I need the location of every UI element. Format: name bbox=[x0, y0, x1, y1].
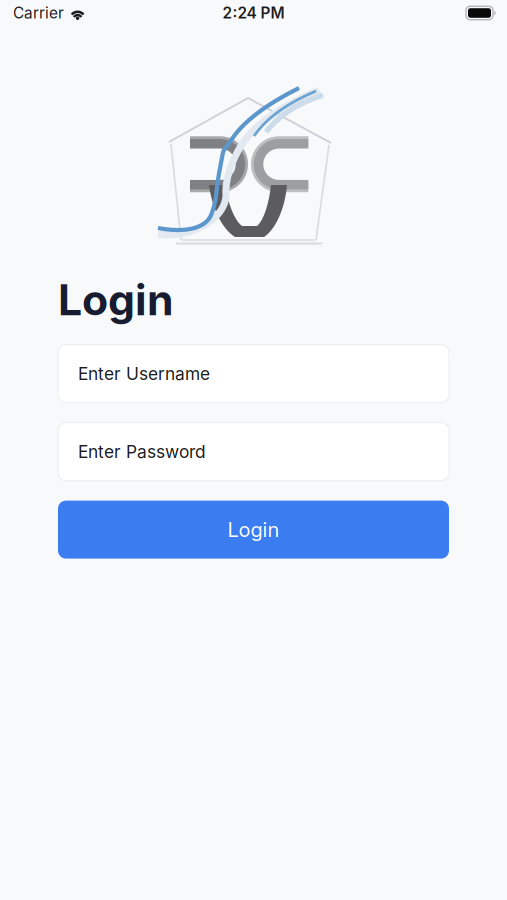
button[interactable]: Enter Password bbox=[58, 423, 449, 481]
button[interactable]: Enter Username bbox=[58, 345, 449, 403]
staticText: Enter Username bbox=[78, 363, 210, 384]
button[interactable]: Login bbox=[58, 501, 449, 559]
staticText: Carrier bbox=[13, 4, 64, 22]
staticText: Login bbox=[58, 274, 174, 326]
staticText: 2:24 PM bbox=[222, 4, 284, 22]
staticText: Login bbox=[227, 517, 279, 542]
staticText: Enter Password bbox=[78, 441, 206, 462]
